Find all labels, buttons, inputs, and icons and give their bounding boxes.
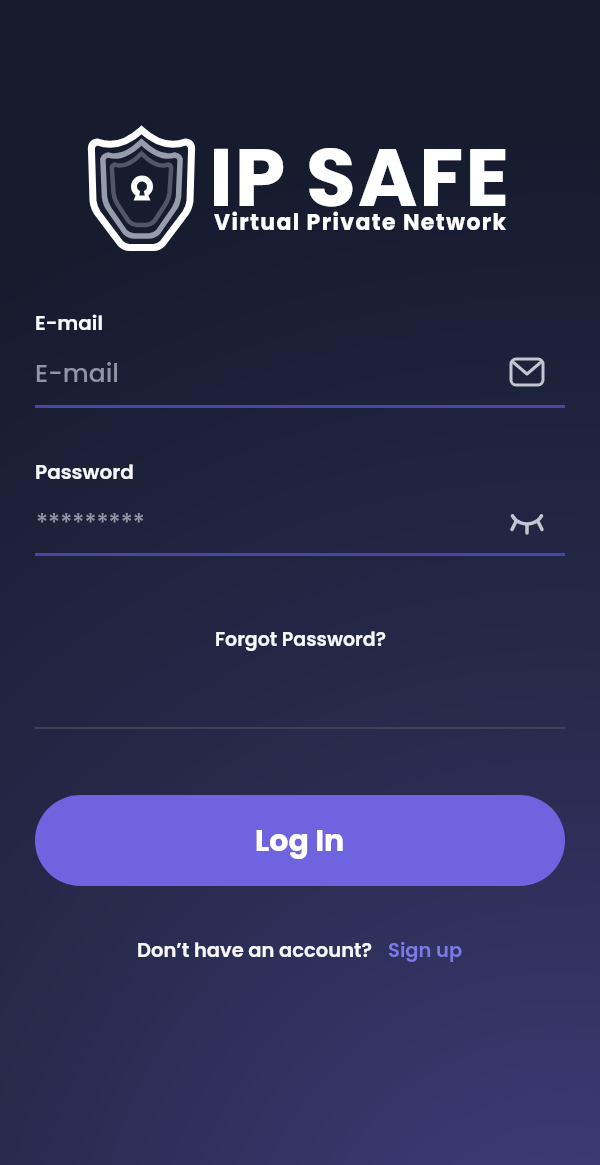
button[interactable] <box>35 490 565 556</box>
staticText: E-mail <box>35 309 103 337</box>
button[interactable]: Log In <box>35 795 565 886</box>
staticText: IP SAFE <box>209 121 511 213</box>
button[interactable]: Forgot Password? <box>165 615 435 663</box>
staticText: Sign up <box>388 937 463 964</box>
staticText: Forgot Password? <box>215 626 386 653</box>
staticText: Password <box>35 458 134 486</box>
button[interactable] <box>35 340 565 408</box>
staticText: ********* <box>36 507 145 541</box>
button[interactable]: Sign up <box>388 937 463 964</box>
staticText: Virtual Private Network <box>214 207 508 237</box>
staticText: Log In <box>255 820 345 862</box>
staticText: Don’t have an account? <box>137 937 373 964</box>
staticText: E-mail <box>35 356 119 391</box>
